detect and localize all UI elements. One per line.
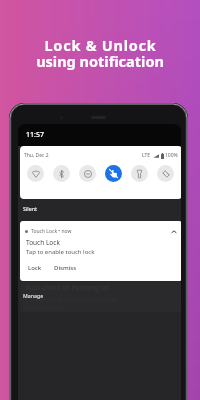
staticText: Touch Lock — [26, 238, 60, 247]
staticText: LTE — [142, 152, 151, 159]
staticText: Thu, Dec 2 — [24, 152, 49, 159]
button[interactable]: Lock — [26, 263, 44, 273]
staticText: Lock will be disabled when you are — [26, 296, 117, 304]
staticText: using notification — [36, 51, 164, 71]
staticText: Silent — [23, 205, 37, 212]
staticText: 11:57 — [26, 130, 44, 140]
button[interactable]: Wi-Fi — [27, 165, 44, 182]
staticText: Touch Lock • now — [31, 228, 72, 235]
button[interactable]: Do not disturb — [79, 165, 96, 182]
button[interactable]: Flashlight — [131, 165, 148, 182]
staticText: Tap to enable touch lock — [26, 248, 95, 256]
button[interactable]: Auto rotate — [157, 165, 174, 182]
staticText: 100% — [165, 152, 178, 159]
staticText: Manage — [23, 292, 44, 299]
button[interactable]: Touch Lock • now — [20, 221, 181, 281]
staticText: Lock — [28, 264, 42, 272]
button[interactable]: Bluetooth — [53, 165, 70, 182]
staticText: Dismiss — [54, 264, 77, 272]
button[interactable]: Touch lock — [105, 165, 122, 182]
staticText: Auto unlock on incoming call — [26, 283, 110, 291]
staticText: Lock & Unlock — [44, 35, 157, 55]
button[interactable]: Dismiss — [52, 263, 79, 273]
